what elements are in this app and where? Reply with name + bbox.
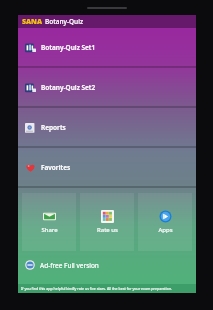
staticText: Apps (158, 226, 173, 234)
button[interactable]: Botany-Quiz Set2 (18, 68, 196, 106)
staticText: Botany-Quiz Set2 (41, 83, 96, 92)
staticText: If you find this app helpful kindly rate… (21, 286, 173, 291)
staticText: SANA (22, 17, 43, 27)
staticText: Share (41, 226, 58, 234)
staticText: Favorites (41, 163, 71, 172)
button[interactable]: Share (22, 193, 76, 251)
button[interactable]: Botany-Quiz Set1 (18, 28, 196, 66)
button[interactable]: Rate us (80, 193, 134, 251)
button[interactable]: Apps (138, 193, 192, 251)
staticText: Rate us (97, 226, 118, 234)
staticText: Reports (41, 123, 66, 132)
button[interactable]: Reports (18, 108, 196, 146)
staticText: Ad-free Full version (40, 261, 99, 270)
staticText: Botany-Quiz Set1 (41, 43, 96, 52)
button[interactable]: Favorites (18, 148, 196, 186)
staticText: Botany-Quiz (45, 17, 84, 26)
button[interactable]: Ad-free Full version (18, 255, 196, 275)
